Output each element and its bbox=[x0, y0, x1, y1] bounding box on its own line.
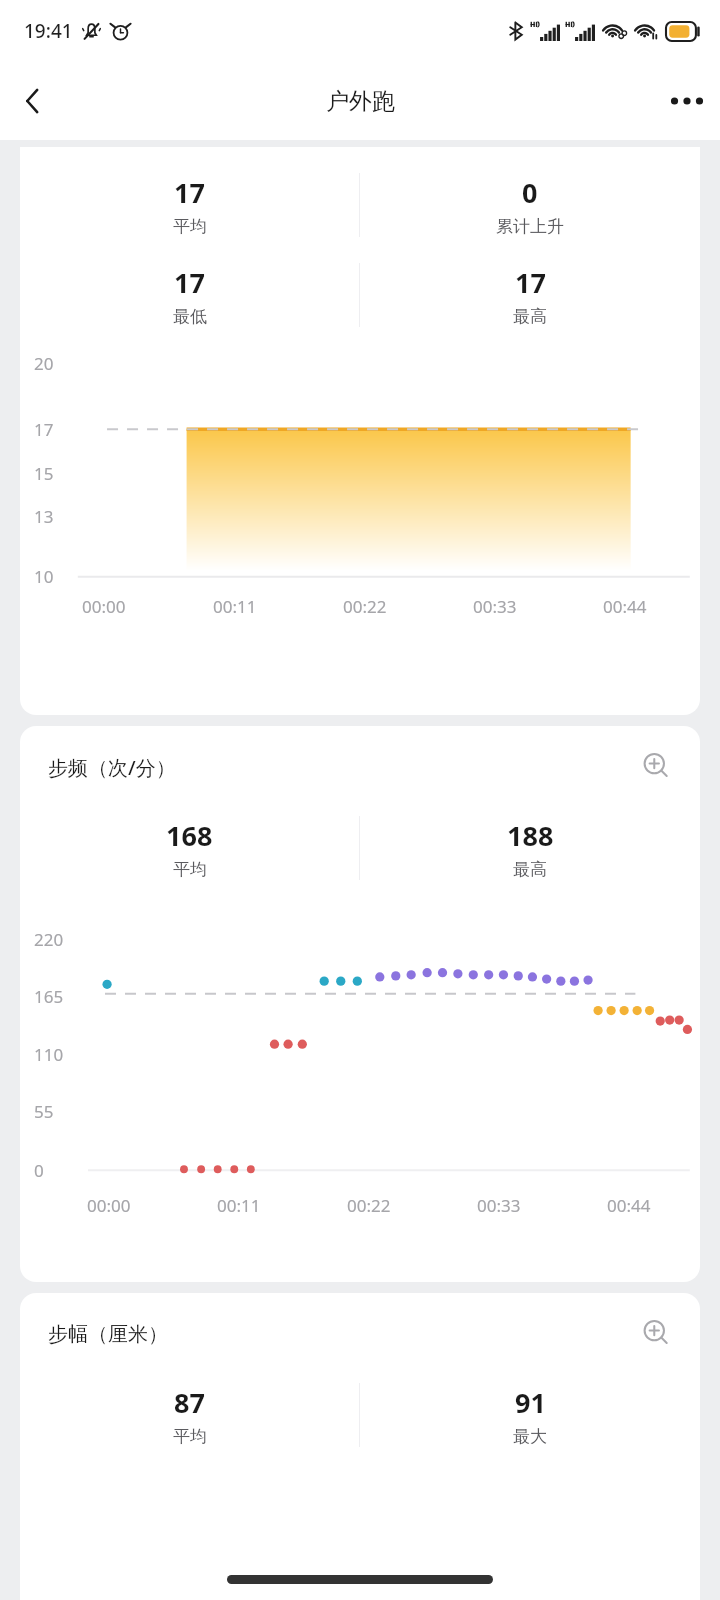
staticText: 00:22 bbox=[347, 1194, 391, 1217]
staticText: 00:11 bbox=[213, 595, 257, 618]
staticText: 累计上升 bbox=[496, 216, 564, 237]
staticText: 110 bbox=[34, 1043, 64, 1066]
staticText: 00:00 bbox=[87, 1194, 131, 1217]
staticText: 220 bbox=[34, 928, 64, 951]
staticText: 91 bbox=[515, 1384, 546, 1421]
staticText: 最高 bbox=[513, 306, 547, 327]
button[interactable]: 步频（次/分） bbox=[20, 726, 700, 1282]
staticText: 00:11 bbox=[217, 1194, 261, 1217]
staticText: 20 bbox=[34, 352, 54, 375]
staticText: 步频（次/分） bbox=[48, 754, 176, 781]
staticText: 最低 bbox=[173, 306, 207, 327]
staticText: 0 bbox=[34, 1159, 44, 1182]
staticText: 10 bbox=[34, 565, 54, 588]
staticText: 平均 bbox=[173, 859, 207, 880]
staticText: 00:44 bbox=[607, 1194, 651, 1217]
staticText: 17 bbox=[174, 174, 205, 211]
staticText: 00:44 bbox=[603, 595, 647, 618]
staticText: 87 bbox=[174, 1384, 205, 1421]
staticText: 168 bbox=[166, 817, 213, 854]
staticText: 0 bbox=[522, 174, 538, 211]
staticText: 17 bbox=[515, 264, 546, 301]
staticText: 55 bbox=[34, 1100, 54, 1123]
staticText: 户外跑 bbox=[326, 87, 395, 116]
staticText: 最大 bbox=[513, 1426, 547, 1447]
staticText: 平均 bbox=[173, 216, 207, 237]
staticText: 19:41 bbox=[24, 18, 73, 44]
staticText: 00:33 bbox=[473, 595, 517, 618]
staticText: 平均 bbox=[173, 1426, 207, 1447]
staticText: 17 bbox=[34, 418, 54, 441]
staticText: 15 bbox=[34, 462, 54, 485]
button[interactable]: 步幅（厘米） bbox=[20, 1293, 700, 1600]
button[interactable]: Expand chart bbox=[634, 1311, 680, 1357]
staticText: 最高 bbox=[513, 859, 547, 880]
staticText: 13 bbox=[34, 505, 54, 528]
button[interactable]: More options bbox=[654, 68, 720, 134]
button[interactable]: Back bbox=[0, 68, 66, 134]
staticText: 00:00 bbox=[82, 595, 126, 618]
staticText: 165 bbox=[34, 985, 64, 1008]
button[interactable]: 17 bbox=[20, 147, 700, 715]
staticText: 步幅（厘米） bbox=[48, 1322, 168, 1347]
staticText: 188 bbox=[507, 817, 554, 854]
staticText: 00:22 bbox=[343, 595, 387, 618]
staticText: 00:33 bbox=[477, 1194, 521, 1217]
staticText: 17 bbox=[174, 264, 205, 301]
button[interactable]: Expand chart bbox=[634, 744, 680, 790]
